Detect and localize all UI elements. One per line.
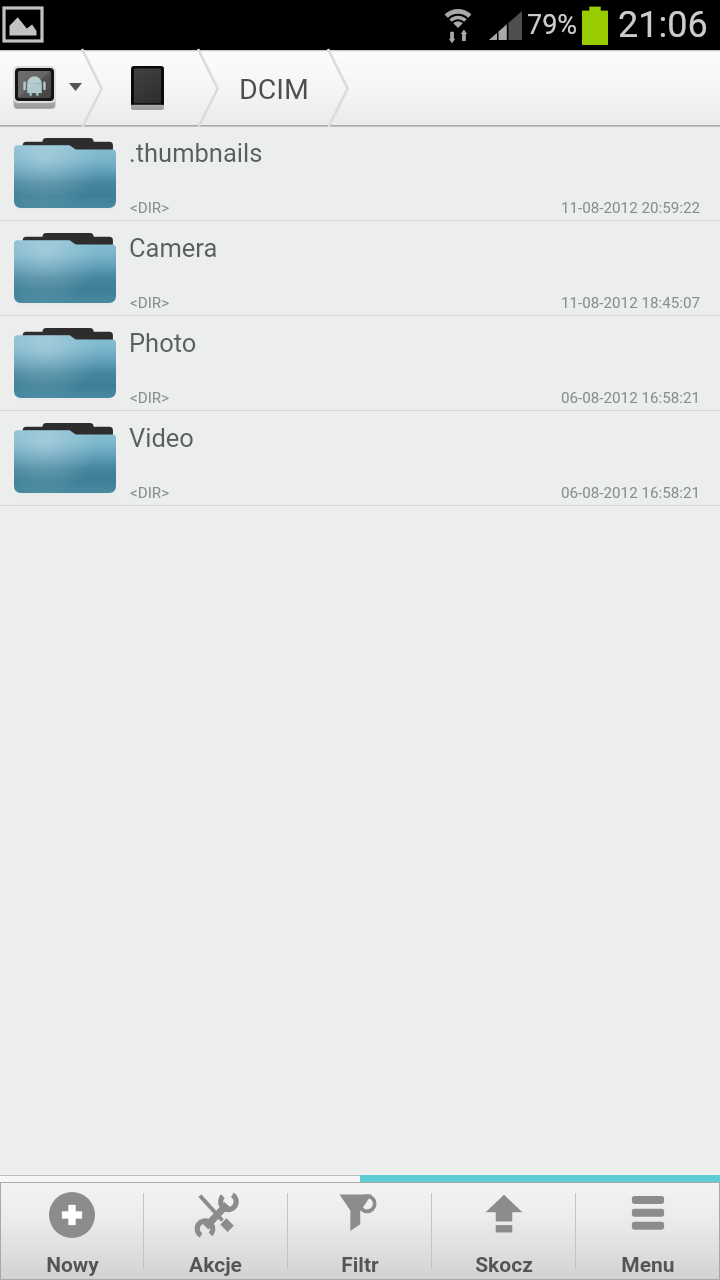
button[interactable]: .thumbnails [0, 127, 720, 222]
button[interactable]: Storage [13, 66, 56, 109]
staticText: Camera [129, 233, 218, 263]
button[interactable]: Menu [576, 1183, 719, 1279]
button[interactable]: Filtr [288, 1183, 431, 1279]
staticText: 11-08-2012 20:59:22 [561, 199, 701, 217]
button[interactable]: Video [0, 412, 720, 507]
staticText: Skocz [475, 1253, 533, 1278]
staticText: <DIR> [130, 389, 170, 407]
staticText: 11-08-2012 18:45:07 [561, 294, 701, 312]
button[interactable]: Camera [0, 222, 720, 317]
staticText: 06-08-2012 16:58:21 [561, 389, 701, 407]
button[interactable]: Photo [0, 317, 720, 412]
button[interactable]: Akcje [144, 1183, 287, 1279]
staticText: Nowy [46, 1253, 99, 1278]
button[interactable]: Skocz [432, 1183, 575, 1279]
staticText: .thumbnails [129, 138, 263, 168]
staticText: 06-08-2012 16:58:21 [561, 484, 701, 502]
staticText: <DIR> [130, 484, 170, 502]
staticText: Akcje [189, 1253, 242, 1278]
staticText: Photo [129, 328, 197, 358]
staticText: 79% [527, 9, 578, 41]
button[interactable]: Internal storage [131, 66, 164, 110]
staticText: Filtr [341, 1253, 379, 1278]
staticText: DCIM [239, 73, 309, 106]
staticText: <DIR> [130, 199, 170, 217]
staticText: Video [129, 423, 194, 453]
staticText: Menu [621, 1253, 675, 1278]
button[interactable]: DCIM [239, 73, 309, 106]
button[interactable]: Nowy [1, 1183, 143, 1279]
other: Gallery notification [4, 8, 42, 41]
staticText: 21:06 [618, 4, 708, 46]
staticText: <DIR> [130, 294, 170, 312]
